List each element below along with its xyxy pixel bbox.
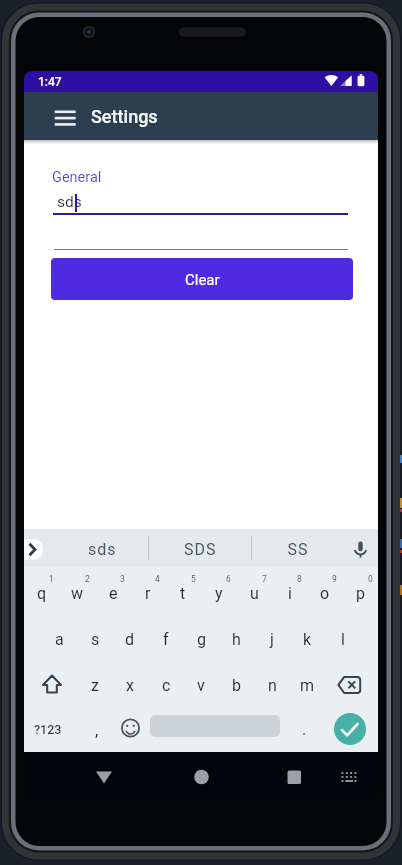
button[interactable]: u xyxy=(239,580,269,606)
button[interactable]: b xyxy=(221,672,251,698)
staticText: y xyxy=(215,584,223,603)
staticText: sds xyxy=(88,540,117,559)
button[interactable]: t xyxy=(168,580,198,606)
button[interactable]: p xyxy=(345,580,375,606)
button[interactable]: z xyxy=(80,672,110,698)
staticText: . xyxy=(302,720,307,739)
staticText: 0 xyxy=(368,574,373,584)
button[interactable]: y xyxy=(204,580,234,606)
button[interactable]: q xyxy=(27,580,57,606)
button[interactable]: h xyxy=(221,626,251,652)
button[interactable]: r xyxy=(133,580,163,606)
button[interactable]: k xyxy=(292,626,322,652)
button[interactable]: n xyxy=(257,672,287,698)
button[interactable]: j xyxy=(257,626,287,652)
button[interactable]: f xyxy=(151,626,181,652)
button[interactable]: Clear xyxy=(51,258,353,300)
staticText: s xyxy=(91,630,100,649)
staticText: m xyxy=(300,676,315,695)
button[interactable]: d xyxy=(115,626,145,652)
staticText: q xyxy=(37,584,47,603)
staticText: 6 xyxy=(226,574,231,584)
staticText: x xyxy=(126,676,134,695)
button[interactable]: . xyxy=(294,716,314,742)
button[interactable] xyxy=(88,761,120,793)
button[interactable]: sds xyxy=(53,188,348,215)
staticText: 9 xyxy=(332,574,337,584)
staticText: i xyxy=(288,584,292,603)
button[interactable]: l xyxy=(328,626,358,652)
staticText: Settings xyxy=(91,106,158,127)
staticText: 7 xyxy=(262,574,267,584)
button[interactable]: x xyxy=(115,672,145,698)
staticText: sds xyxy=(57,193,82,211)
staticText: v xyxy=(197,676,205,695)
staticText: General xyxy=(52,169,102,186)
button[interactable]: c xyxy=(151,672,181,698)
staticText: b xyxy=(232,676,241,695)
button[interactable]: g xyxy=(186,626,216,652)
button[interactable] xyxy=(333,761,365,793)
staticText: 3 xyxy=(120,574,125,584)
button[interactable]: v xyxy=(186,672,216,698)
staticText: f xyxy=(163,630,169,649)
staticText: n xyxy=(268,676,277,695)
button[interactable]: o xyxy=(310,580,340,606)
staticText: t xyxy=(180,584,186,603)
button[interactable] xyxy=(278,761,310,793)
button[interactable] xyxy=(185,761,217,793)
staticText: j xyxy=(270,630,274,649)
button[interactable]: a xyxy=(44,626,74,652)
staticText: , xyxy=(95,721,99,740)
staticText: p xyxy=(356,584,365,603)
staticText: 5 xyxy=(191,574,196,584)
button[interactable]: w xyxy=(62,580,92,606)
staticText: 2 xyxy=(85,574,90,584)
button[interactable]: m xyxy=(292,672,322,698)
staticText: ?123 xyxy=(34,722,62,737)
button[interactable]: sds xyxy=(67,530,137,568)
staticText: z xyxy=(91,676,99,695)
staticText: l xyxy=(341,630,345,649)
button[interactable]: i xyxy=(275,580,305,606)
button[interactable]: , xyxy=(87,717,107,743)
button[interactable]: SS xyxy=(262,530,332,568)
staticText: k xyxy=(303,630,312,649)
staticText: d xyxy=(125,630,135,649)
staticText: w xyxy=(71,584,84,603)
button[interactable] xyxy=(334,713,366,745)
staticText: 8 xyxy=(297,574,302,584)
staticText: 1:47 xyxy=(38,75,62,89)
button[interactable]: SDS xyxy=(165,530,235,568)
staticText: SS xyxy=(287,540,308,559)
staticText: 4 xyxy=(155,574,160,584)
button[interactable] xyxy=(50,105,80,129)
staticText: g xyxy=(197,630,206,649)
staticText: h xyxy=(232,630,241,649)
staticText: c xyxy=(162,676,171,695)
button[interactable]: e xyxy=(98,580,128,606)
button[interactable]: s xyxy=(80,626,110,652)
button[interactable] xyxy=(24,539,43,560)
staticText: r xyxy=(145,584,151,603)
staticText: u xyxy=(250,584,259,603)
button[interactable]: ?123 xyxy=(26,716,70,742)
staticText: a xyxy=(55,630,64,649)
staticText: 1 xyxy=(49,574,54,584)
staticText: SDS xyxy=(184,540,217,559)
staticText: Clear xyxy=(185,271,220,289)
staticText: e xyxy=(109,584,118,603)
staticText: o xyxy=(320,584,330,603)
